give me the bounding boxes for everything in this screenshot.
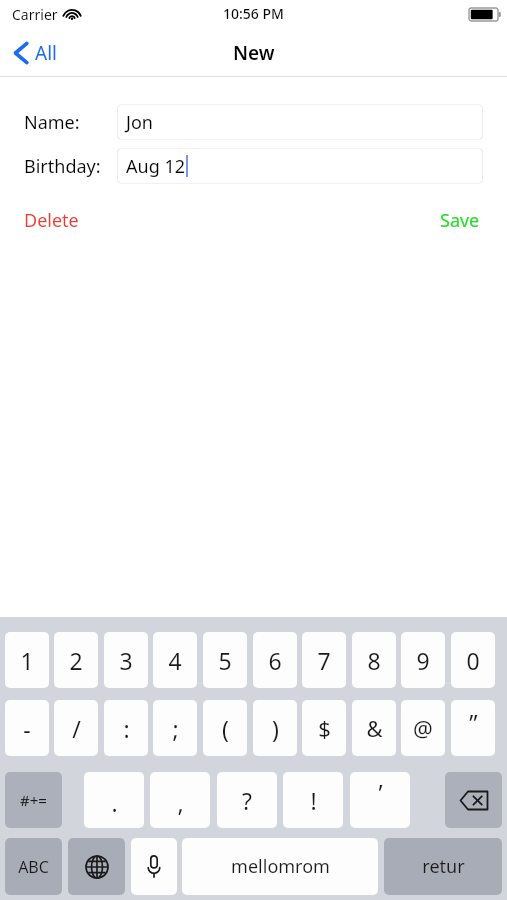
- button[interactable]: :: [104, 700, 148, 756]
- button[interactable]: $: [302, 700, 346, 756]
- button[interactable]: 8: [352, 632, 396, 688]
- button[interactable]: Aug 12: [117, 148, 483, 184]
- button[interactable]: &: [352, 700, 396, 756]
- staticText: .: [111, 787, 118, 818]
- button[interactable]: 7: [302, 632, 346, 688]
- staticText: Jon: [126, 110, 153, 135]
- staticText: ABC: [18, 856, 49, 878]
- button[interactable]: /: [54, 700, 98, 756]
- staticText: retur: [422, 854, 465, 879]
- staticText: New: [233, 40, 275, 66]
- staticText: 1: [20, 645, 34, 676]
- staticText: ): [272, 713, 279, 744]
- staticText: Save: [440, 208, 480, 233]
- staticText: 5: [218, 645, 232, 676]
- button[interactable]: ,: [150, 772, 210, 828]
- staticText: 9: [416, 645, 430, 676]
- button[interactable]: 0: [451, 632, 495, 688]
- button[interactable]: .: [84, 772, 144, 828]
- staticText: ”: [469, 707, 478, 738]
- staticText: 7: [317, 645, 331, 676]
- button[interactable]: Backspace: [445, 772, 502, 828]
- button[interactable]: 1: [5, 632, 49, 688]
- button[interactable]: @: [401, 700, 445, 756]
- button[interactable]: !: [283, 772, 343, 828]
- button[interactable]: -: [5, 700, 49, 756]
- button[interactable]: ’: [350, 772, 410, 828]
- staticText: ,: [177, 787, 184, 818]
- staticText: ?: [242, 785, 252, 816]
- staticText: Carrier: [12, 5, 58, 24]
- staticText: $: [318, 713, 331, 743]
- button[interactable]: Save: [440, 208, 480, 233]
- staticText: 2: [69, 645, 83, 676]
- staticText: #+=: [20, 790, 47, 810]
- staticText: ’: [378, 777, 383, 808]
- button[interactable]: ): [253, 700, 297, 756]
- staticText: 10:56 PM: [223, 4, 284, 23]
- staticText: !: [310, 785, 317, 816]
- button[interactable]: Delete: [24, 208, 79, 233]
- staticText: /: [72, 713, 81, 744]
- staticText: 8: [367, 645, 381, 676]
- staticText: mellomrom: [231, 854, 330, 879]
- staticText: Birthday:: [24, 154, 101, 179]
- staticText: Aug 12: [126, 154, 185, 179]
- staticText: 0: [466, 645, 480, 676]
- staticText: -: [23, 713, 31, 744]
- staticText: &: [366, 713, 383, 743]
- button[interactable]: ABC: [5, 838, 62, 895]
- button[interactable]: ?: [217, 772, 277, 828]
- button[interactable]: retur: [384, 838, 502, 895]
- staticText: @: [413, 713, 433, 743]
- button[interactable]: Change keyboard: [68, 838, 125, 895]
- button[interactable]: 3: [104, 632, 148, 688]
- staticText: 6: [268, 645, 282, 676]
- staticText: ;: [172, 713, 179, 744]
- staticText: 3: [119, 645, 133, 676]
- button[interactable]: #+=: [5, 772, 62, 828]
- button[interactable]: 9: [401, 632, 445, 688]
- staticText: :: [123, 713, 130, 744]
- button[interactable]: (: [203, 700, 247, 756]
- button[interactable]: 4: [153, 632, 197, 688]
- button[interactable]: mellomrom: [182, 838, 378, 895]
- button[interactable]: 6: [253, 632, 297, 688]
- button[interactable]: ”: [451, 700, 495, 756]
- button[interactable]: All: [0, 40, 67, 66]
- button[interactable]: 2: [54, 632, 98, 688]
- button[interactable]: ;: [153, 700, 197, 756]
- staticText: Name:: [24, 110, 80, 135]
- button[interactable]: Dictate: [131, 838, 177, 895]
- button[interactable]: 5: [203, 632, 247, 688]
- staticText: Delete: [24, 208, 79, 233]
- button[interactable]: Jon: [117, 104, 483, 140]
- staticText: All: [35, 40, 57, 66]
- staticText: (: [222, 713, 229, 744]
- staticText: 4: [168, 645, 182, 676]
